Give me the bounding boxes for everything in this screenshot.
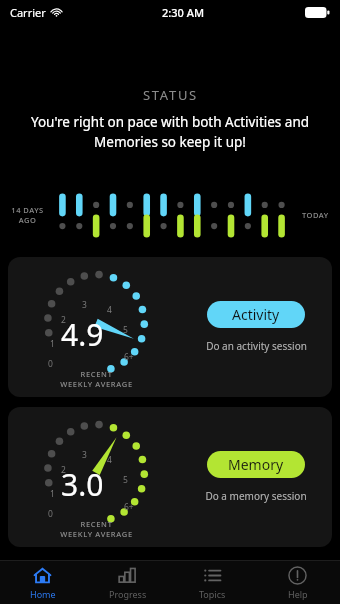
button[interactable]: 0: [8, 257, 332, 397]
staticText: Home: [30, 588, 56, 600]
staticText: 2:30 AM: [162, 5, 205, 20]
staticText: RECENT WEEKLY AVERAGE: [60, 519, 133, 539]
staticText: 6+: [124, 501, 134, 513]
staticText: RECENT WEEKLY AVERAGE: [60, 369, 133, 389]
staticText: 6+: [124, 351, 134, 363]
staticText: Topics: [199, 588, 226, 600]
staticText: 2: [61, 464, 66, 476]
staticText: 3: [82, 299, 87, 311]
staticText: Carrier: [10, 5, 46, 20]
button[interactable]: Memory: [207, 451, 305, 478]
staticText: 5: [123, 474, 128, 486]
staticText: STATUS: [143, 86, 198, 104]
staticText: 1: [50, 338, 55, 350]
staticText: 0: [48, 358, 53, 370]
other: Topics: [203, 566, 222, 585]
staticText: 3: [82, 449, 87, 461]
button[interactable]: Activity: [207, 301, 305, 328]
button[interactable]: Progress: [85, 561, 170, 604]
staticText: Activity: [232, 305, 280, 324]
staticText: 2: [61, 314, 66, 326]
button[interactable]: 0: [8, 407, 332, 547]
staticText: 5: [123, 324, 128, 336]
staticText: Progress: [109, 588, 147, 600]
staticText: Help: [288, 588, 308, 600]
other: Progress: [118, 566, 137, 585]
button[interactable]: Home: [0, 561, 85, 604]
staticText: 4: [107, 304, 112, 316]
other: Help: [288, 566, 307, 585]
staticText: You're right on pace with both Activitie…: [30, 113, 310, 151]
other: Home: [33, 566, 52, 585]
staticText: TODAY: [302, 210, 329, 220]
staticText: Memory: [228, 455, 284, 474]
staticText: Do a memory session: [205, 489, 307, 503]
staticText: 14 DAYS AGO: [11, 205, 44, 225]
staticText: 0: [48, 508, 53, 520]
staticText: Do an activity session: [206, 339, 307, 353]
staticText: 3.0: [61, 464, 104, 505]
button[interactable]: Topics: [170, 561, 255, 604]
staticText: 4.9: [61, 314, 104, 355]
button[interactable]: Help: [255, 561, 340, 604]
staticText: 4: [107, 454, 112, 466]
staticText: 1: [50, 488, 55, 500]
